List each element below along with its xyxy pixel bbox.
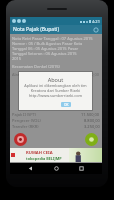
staticText: Nomor : 05 / Bulk Agustus Pasar Kota <box>12 41 83 46</box>
staticText: 8.800,00 <box>84 118 100 123</box>
staticText: About <box>19 76 92 83</box>
staticText: Transfer (RKR) <box>12 124 39 129</box>
button[interactable]: Recents <box>77 164 86 173</box>
staticText: Alamat Pasar Umum <box>12 72 51 77</box>
staticText: 4:21 <box>92 19 100 24</box>
staticText: Aplikasi ini dikembangkan oleh tim Kreat… <box>19 83 92 98</box>
staticText: Tanggal Setoran : 06 Agustus 2015 <box>12 51 77 56</box>
staticText: tokopedia BELIJMP <box>26 156 62 161</box>
staticText: 3.250,00 <box>84 124 100 129</box>
button[interactable]: RUMAH CEIA <box>10 148 102 162</box>
button[interactable]: Pajak II (SPT) <box>12 111 100 117</box>
staticText: 2015 <box>12 56 22 61</box>
staticText: Nota Retri Pasar Tanggal : 07 Agustus 20… <box>12 36 93 41</box>
button[interactable]: Back <box>26 164 35 173</box>
button[interactable]: Add <box>85 133 98 146</box>
staticText: Pengecer (VOL) <box>12 118 41 123</box>
staticText: Kecamatan Denkel (2015) <box>12 64 60 69</box>
button[interactable]: Home <box>52 164 61 173</box>
staticText: Nota Pajak (Bupati) <box>13 26 59 33</box>
staticText: 11.500,00 <box>81 112 100 117</box>
staticText: Pajak II (SPT) <box>12 112 37 117</box>
button[interactable]: Transfer (RKR) <box>12 123 100 129</box>
staticText: RUMAH CEIA <box>26 150 53 156</box>
staticText: Tanggal 06 : 05 Agustus 2015 Pasar <box>12 46 79 51</box>
staticText: 12.000,00 <box>81 72 100 77</box>
button[interactable]: Info <box>93 27 99 33</box>
button[interactable]: Pengecer (VOL) <box>12 117 100 123</box>
staticText: OK <box>64 103 69 107</box>
button[interactable]: OK <box>61 102 71 107</box>
button[interactable]: Record <box>14 133 27 146</box>
